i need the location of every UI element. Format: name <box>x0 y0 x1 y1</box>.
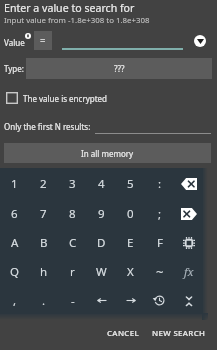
staticText: 4 <box>98 176 105 192</box>
staticText: Enter a value to search for <box>4 1 135 15</box>
button[interactable]: Delete <box>174 198 203 227</box>
staticText: 2 <box>40 176 47 192</box>
staticText: Type: <box>4 63 24 74</box>
staticText: W <box>96 264 107 280</box>
staticText: , <box>13 293 17 309</box>
staticText: X <box>127 264 134 280</box>
staticText: ; <box>158 206 162 222</box>
staticText: : <box>158 176 162 192</box>
button[interactable]: History <box>145 285 174 314</box>
button[interactable]: . <box>29 285 58 314</box>
button[interactable]: W <box>87 256 116 285</box>
staticText: 5 <box>127 176 134 192</box>
staticText: 0 <box>127 206 134 222</box>
button[interactable]: 7 <box>29 198 58 227</box>
staticText: A <box>11 235 19 251</box>
staticText: = <box>40 34 46 47</box>
button[interactable]: 6 <box>0 198 29 227</box>
button[interactable]: F <box>145 227 174 256</box>
staticText: - <box>71 293 75 309</box>
button[interactable]: In all memory <box>4 143 211 163</box>
staticText: F <box>157 235 163 251</box>
staticText: 3 <box>69 176 76 192</box>
button[interactable]: C <box>58 227 87 256</box>
staticText: 9 <box>98 206 105 222</box>
staticText: C <box>69 235 77 251</box>
button[interactable]: h <box>29 256 58 285</box>
button[interactable]: ; <box>145 198 174 227</box>
button[interactable]: r <box>58 256 87 285</box>
staticText: Only the first N results: <box>4 121 91 132</box>
button[interactable]: ~ <box>145 256 174 285</box>
button[interactable]: 4 <box>87 168 116 198</box>
button[interactable]: Q <box>0 256 29 285</box>
staticText: fx <box>184 264 194 279</box>
button[interactable]: - <box>58 285 87 314</box>
button[interactable]: Memory <box>174 227 203 256</box>
staticText: r <box>70 264 75 280</box>
staticText: . <box>42 293 46 309</box>
button[interactable]: NEW SEARCH <box>147 324 211 343</box>
button[interactable]: 5 <box>116 168 145 198</box>
staticText: Value <box>4 37 25 48</box>
button[interactable]: Backspace <box>174 168 203 198</box>
button[interactable]: , <box>0 285 29 314</box>
button[interactable]: The value is encrypted <box>6 91 108 105</box>
staticText: 1 <box>11 176 18 192</box>
staticText: Q <box>10 264 19 280</box>
staticText: D <box>97 235 106 251</box>
staticText: 8 <box>69 206 76 222</box>
button[interactable]: CANCEL <box>102 324 145 343</box>
staticText: ~ <box>156 263 164 281</box>
button[interactable]: 1 <box>0 168 29 198</box>
button[interactable]: E <box>116 227 145 256</box>
button[interactable]: A <box>0 227 29 256</box>
button[interactable]: Open dropdown <box>194 35 206 47</box>
staticText: Input value from -1.8e+308 to 1.8e+308 <box>4 15 150 26</box>
button[interactable]: 0 <box>116 198 145 227</box>
staticText: ??? <box>114 63 125 74</box>
button[interactable]: Hide keyboard <box>174 285 203 314</box>
button[interactable]: Info <box>25 33 31 39</box>
button[interactable]: Move left <box>87 285 116 314</box>
button[interactable]: D <box>87 227 116 256</box>
staticText: In all memory <box>81 148 134 159</box>
staticText: h <box>40 264 48 280</box>
button[interactable]: 9 <box>87 198 116 227</box>
button[interactable]: Move right <box>116 285 145 314</box>
button[interactable]: fx <box>174 256 203 285</box>
button[interactable]: 8 <box>58 198 87 227</box>
button[interactable]: = <box>34 31 52 50</box>
staticText: NEW SEARCH <box>152 328 206 339</box>
staticText: 6 <box>11 206 18 222</box>
staticText: B <box>40 235 48 251</box>
staticText: The value is encrypted <box>23 93 108 104</box>
staticText: E <box>127 235 134 251</box>
staticText: 7 <box>40 206 47 222</box>
button[interactable]: X <box>116 256 145 285</box>
button[interactable]: ??? <box>26 58 212 79</box>
button[interactable]: B <box>29 227 58 256</box>
button[interactable]: 3 <box>58 168 87 198</box>
staticText: CANCEL <box>107 328 140 339</box>
button[interactable]: 2 <box>29 168 58 198</box>
button[interactable]: : <box>145 168 174 198</box>
